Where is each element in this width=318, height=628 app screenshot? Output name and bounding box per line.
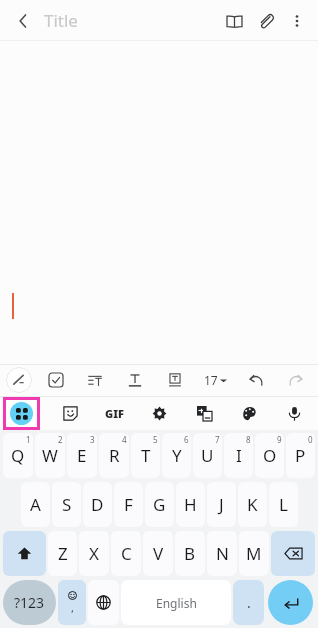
button[interactable]: Emoji [58, 580, 86, 625]
button[interactable]: U [193, 433, 222, 478]
button[interactable]: Y [162, 433, 191, 478]
button[interactable]: H [176, 482, 205, 527]
button[interactable]: G [145, 482, 174, 527]
button[interactable]: More options [282, 6, 312, 36]
staticText: 1 [26, 434, 31, 445]
staticText: 17 [204, 372, 218, 388]
button[interactable]: R [99, 433, 129, 478]
staticText: 5 [153, 434, 158, 445]
staticText: P [295, 444, 306, 467]
staticText: U [201, 444, 214, 467]
staticText: GIF [105, 406, 124, 421]
staticText: A [30, 493, 41, 516]
button[interactable]: Attach [250, 5, 282, 37]
staticText: V [153, 542, 164, 565]
button[interactable]: Switch keyboard [6, 400, 37, 427]
button[interactable]: Checklist [43, 365, 69, 395]
button[interactable]: N [207, 531, 237, 576]
button[interactable]: Text style [122, 365, 148, 395]
staticText: 8 [246, 434, 251, 445]
staticText: C [121, 542, 132, 565]
staticText: Z [58, 542, 68, 565]
staticText: K [247, 493, 258, 516]
button[interactable]: B [175, 531, 205, 576]
staticText: O [263, 444, 277, 467]
button[interactable]: Voice input [279, 398, 309, 428]
button[interactable]: E [67, 433, 97, 478]
button[interactable]: X [79, 531, 109, 576]
button[interactable]: W [35, 433, 65, 478]
button[interactable]: English [121, 580, 231, 625]
button[interactable]: Shift [3, 531, 46, 576]
staticText: . [247, 593, 251, 612]
button[interactable]: V [143, 531, 173, 576]
staticText: G [153, 493, 166, 516]
button[interactable]: M [239, 531, 269, 576]
button[interactable]: ?123 [3, 580, 56, 625]
staticText: T [141, 444, 151, 467]
button[interactable]: Change language [88, 580, 119, 625]
button[interactable]: S [52, 482, 81, 527]
staticText: 9 [277, 434, 282, 445]
staticText: R [109, 444, 120, 467]
staticText: 6 [184, 434, 189, 445]
staticText: 2 [58, 434, 63, 445]
button[interactable]: F [114, 482, 143, 527]
staticText: M [246, 542, 262, 565]
staticText: 7 [215, 434, 220, 445]
button[interactable]: . [233, 580, 264, 625]
staticText: B [184, 542, 196, 565]
button[interactable]: Paragraph [82, 365, 108, 395]
button[interactable]: Reading view [218, 5, 250, 37]
button[interactable]: O [255, 433, 284, 478]
button[interactable]: Settings [144, 398, 174, 428]
staticText: H [184, 493, 197, 516]
button[interactable]: Theme [234, 398, 264, 428]
staticText: Title [44, 9, 78, 32]
staticText: L [279, 493, 288, 516]
staticText: E [77, 444, 87, 467]
button[interactable]: Translate [189, 398, 219, 428]
staticText: Y [172, 444, 182, 467]
staticText: 0 [308, 434, 313, 445]
button[interactable]: I [224, 433, 253, 478]
staticText: W [42, 444, 58, 467]
button[interactable]: A [21, 482, 50, 527]
button[interactable]: Redo [283, 365, 309, 395]
staticText: 3 [90, 434, 95, 445]
staticText: D [91, 493, 104, 516]
staticText: X [89, 542, 99, 565]
staticText: N [216, 542, 229, 565]
button[interactable]: Q [3, 433, 33, 478]
button[interactable]: GIF [99, 398, 129, 428]
button[interactable]: Z [48, 531, 77, 576]
button[interactable]: J [207, 482, 236, 527]
staticText: F [124, 493, 133, 516]
button[interactable]: Back [6, 4, 40, 38]
staticText: English [156, 595, 197, 611]
button[interactable]: Enter [268, 580, 313, 625]
button[interactable]: P [286, 433, 315, 478]
button[interactable]: T [131, 433, 160, 478]
staticText: Q [11, 444, 25, 467]
staticText: S [62, 493, 72, 516]
staticText: ?123 [14, 593, 45, 612]
button[interactable]: Text box [162, 365, 188, 395]
button[interactable]: K [238, 482, 267, 527]
button[interactable]: Stickers [55, 398, 85, 428]
button[interactable]: Backspace [271, 531, 315, 576]
staticText: , [71, 600, 74, 615]
button[interactable]: Pen [6, 367, 32, 393]
button[interactable]: C [111, 531, 141, 576]
staticText: 4 [122, 434, 127, 445]
staticText: J [219, 493, 224, 516]
staticText: I [236, 444, 242, 467]
button[interactable]: L [269, 482, 298, 527]
button[interactable]: D [83, 482, 112, 527]
button[interactable]: Undo [243, 365, 269, 395]
button[interactable]: 17 [202, 372, 229, 388]
